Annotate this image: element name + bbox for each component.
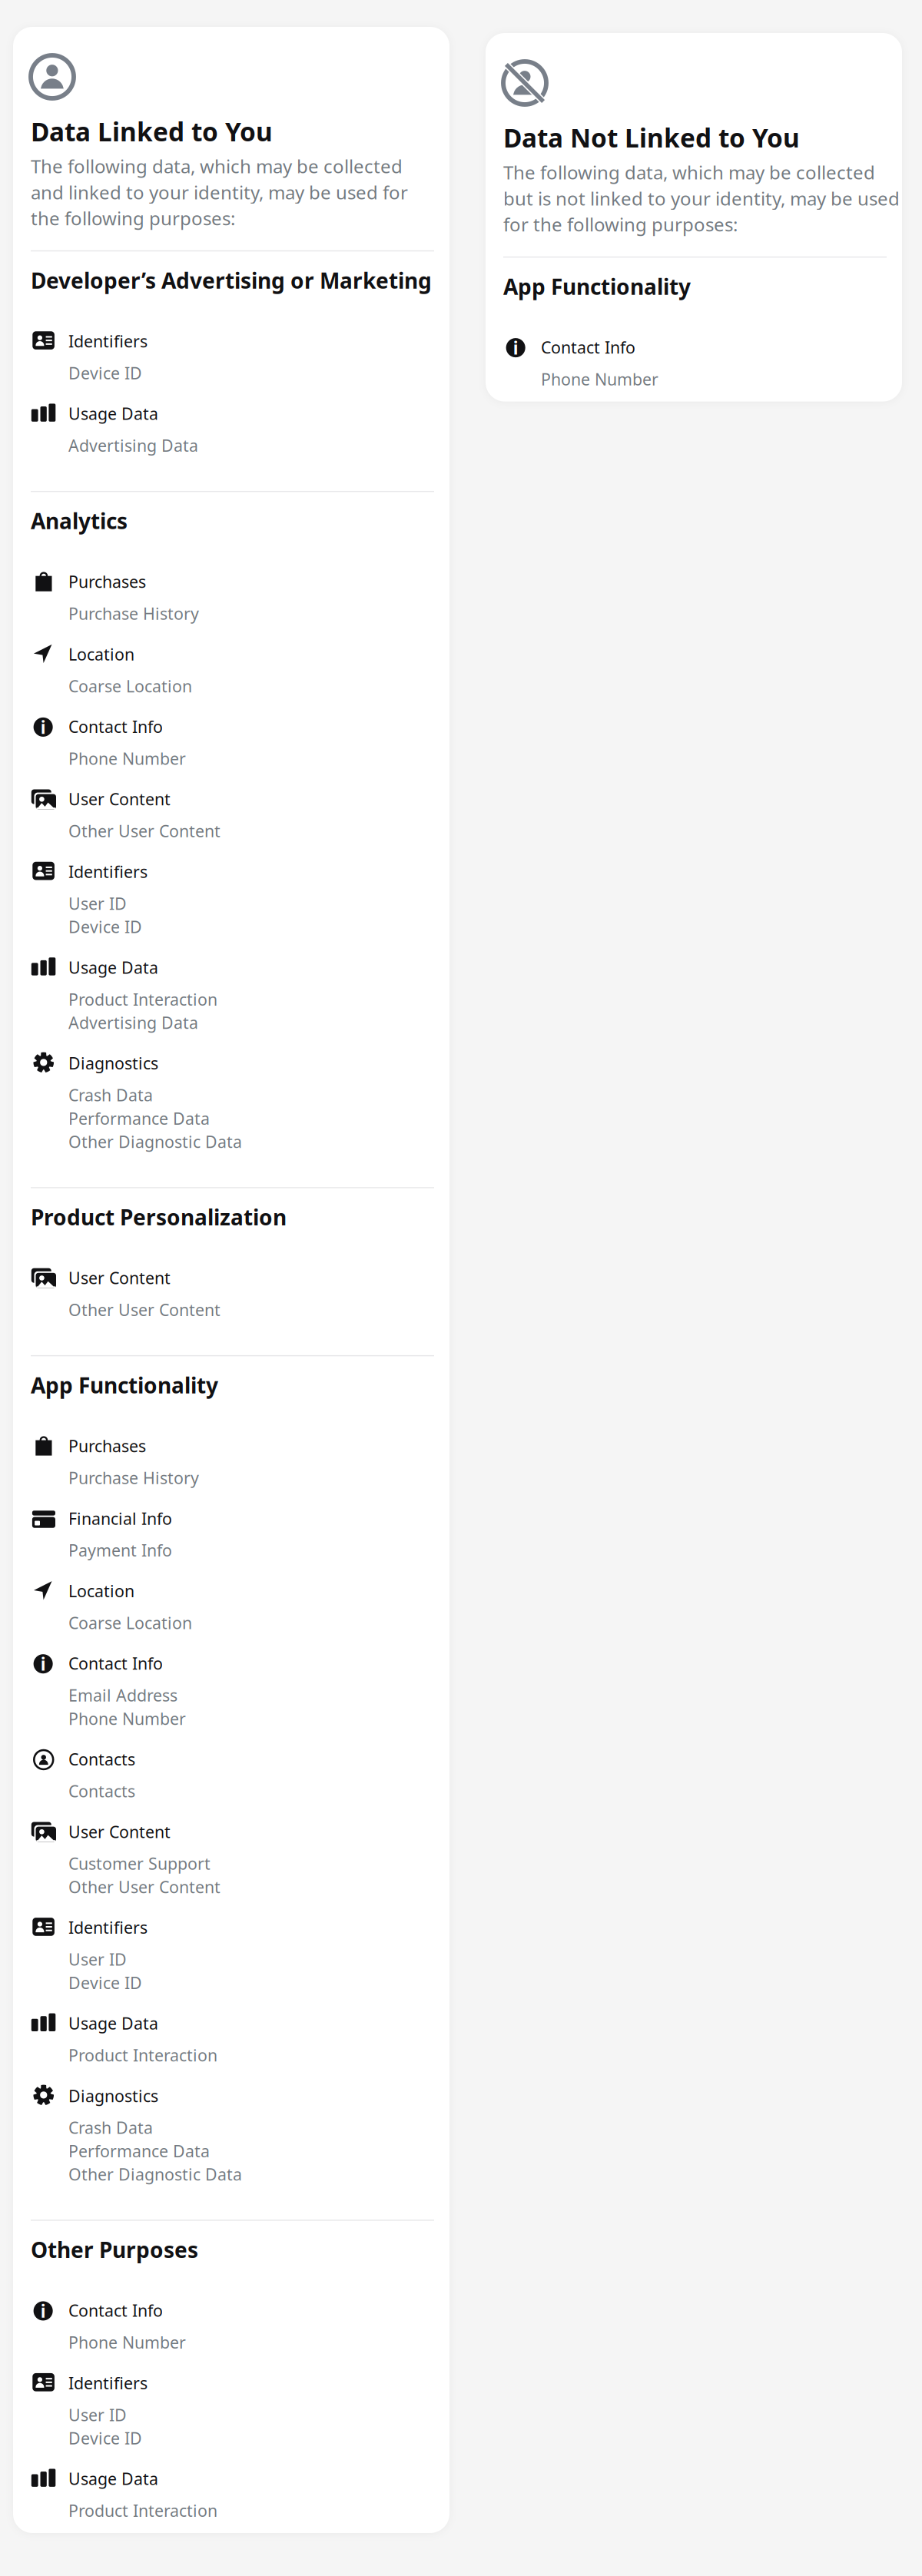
button[interactable]: Diagnostics [31, 1052, 434, 1154]
staticText: Data Not Linked to You [503, 121, 800, 155]
staticText: Performance Data [68, 1107, 210, 1129]
button[interactable]: Purchases [31, 570, 434, 626]
button[interactable]: Location [31, 1580, 434, 1635]
button[interactable]: User Content [31, 1267, 434, 1322]
staticText: Phone Number [68, 748, 186, 769]
staticText: Analytics [31, 507, 128, 535]
staticText: Other User Content [68, 820, 221, 842]
button[interactable]: Diagnostics [31, 2085, 434, 2187]
staticText: Purchases [68, 571, 146, 592]
staticText: Device ID [68, 2427, 142, 2449]
staticText: Advertising Data [68, 435, 198, 456]
staticText: User Content [68, 1267, 171, 1289]
staticText: Identifiers [68, 2372, 148, 2394]
staticText: Phone Number [68, 2331, 186, 2353]
staticText: Advertising Data [68, 1012, 198, 1033]
staticText: Data Linked to You [31, 114, 273, 149]
staticText: Identifiers [68, 330, 148, 352]
staticText: User ID [68, 1948, 127, 1970]
staticText: Usage Data [68, 956, 158, 978]
staticText: Purchase History [68, 1467, 199, 1489]
button[interactable]: i [31, 2299, 434, 2355]
button[interactable]: User Content [31, 788, 434, 843]
staticText: Contact Info [68, 2300, 163, 2321]
staticText: Usage Data [68, 2012, 158, 2034]
staticText: Contact Info [68, 1652, 163, 1674]
staticText: Usage Data [68, 2468, 158, 2490]
staticText: Other Purposes [31, 2235, 198, 2264]
staticText: Diagnostics [68, 2085, 158, 2107]
button[interactable]: i [31, 715, 434, 771]
staticText: App Functionality [503, 272, 691, 301]
staticText: User Content [68, 1821, 171, 1842]
staticText: Customer Support [68, 1853, 211, 1874]
button[interactable]: i [503, 336, 887, 392]
staticText: i [40, 2299, 46, 2322]
button[interactable]: Identifiers [31, 1916, 434, 1995]
staticText: Product Interaction [68, 2500, 217, 2521]
staticText: Performance Data [68, 2140, 210, 2162]
button[interactable]: Financial Info [31, 1507, 434, 1563]
button[interactable]: Identifiers [31, 860, 434, 939]
staticText: Diagnostics [68, 1052, 158, 1074]
staticText: The following data, which may be collect… [503, 160, 900, 237]
staticText: Location [68, 1580, 134, 1602]
button[interactable]: Location [31, 643, 434, 698]
staticText: i [513, 336, 518, 359]
button[interactable]: Usage Data [31, 2468, 434, 2523]
staticText: Location [68, 643, 134, 665]
staticText: Contacts [68, 1780, 135, 1802]
staticText: Usage Data [68, 403, 158, 424]
staticText: Crash Data [68, 1084, 153, 1106]
staticText: Device ID [68, 916, 142, 938]
button[interactable]: Identifiers [31, 2372, 434, 2450]
staticText: Contact Info [68, 716, 163, 737]
staticText: Crash Data [68, 2117, 153, 2138]
staticText: i [40, 1652, 46, 1675]
staticText: Identifiers [68, 1917, 148, 1938]
staticText: User Content [68, 788, 171, 810]
staticText: Other Diagnostic Data [68, 1131, 242, 1152]
staticText: Identifiers [68, 861, 148, 882]
staticText: App Functionality [31, 1371, 218, 1399]
staticText: Email Address [68, 1684, 177, 1706]
staticText: Phone Number [68, 1708, 186, 1729]
staticText: Coarse Location [68, 675, 192, 697]
button[interactable]: User Content [31, 1820, 434, 1899]
staticText: Developer’s Advertising or Marketing [31, 266, 432, 295]
button[interactable]: Purchases [31, 1435, 434, 1490]
staticText: User ID [68, 892, 127, 914]
staticText: Contact Info [541, 336, 635, 358]
staticText: Other User Content [68, 1876, 221, 1898]
staticText: Other Diagnostic Data [68, 2163, 242, 2185]
button[interactable]: Usage Data [31, 956, 434, 1035]
button[interactable]: Identifiers [31, 330, 434, 385]
staticText: Device ID [68, 362, 142, 384]
staticText: Phone Number [541, 368, 658, 390]
button[interactable]: Contacts [31, 1748, 434, 1804]
button[interactable]: i [31, 1652, 434, 1731]
staticText: User ID [68, 2404, 127, 2426]
staticText: Product Personalization [31, 1203, 287, 1231]
staticText: Purchases [68, 1435, 146, 1457]
staticText: Device ID [68, 1972, 142, 1993]
staticText: Coarse Location [68, 1612, 192, 1634]
staticText: Product Interaction [68, 2044, 217, 2066]
staticText: i [40, 715, 46, 739]
button[interactable]: Usage Data [31, 402, 434, 458]
staticText: The following data, which may be collect… [31, 154, 408, 230]
staticText: Payment Info [68, 1539, 172, 1561]
staticText: Contacts [68, 1748, 135, 1770]
staticText: Product Interaction [68, 988, 217, 1010]
staticText: Other User Content [68, 1299, 221, 1321]
staticText: Financial Info [68, 1507, 172, 1529]
staticText: Purchase History [68, 603, 199, 624]
button[interactable]: Usage Data [31, 2012, 434, 2068]
